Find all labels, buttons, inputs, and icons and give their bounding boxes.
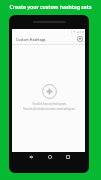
- button[interactable]: Back: [28, 154, 34, 160]
- button[interactable]: Help: [76, 35, 84, 43]
- staticText: Create your custom hashtag sets: [0, 4, 101, 11]
- button[interactable]: Recents: [65, 154, 71, 160]
- button[interactable]: Home: [47, 154, 53, 160]
- staticText: Press the plus button to create a new ha…: [23, 107, 75, 111]
- button[interactable]: Add hashtag set: [42, 84, 57, 99]
- staticText: You don't have any hashtag sets.: [32, 102, 67, 106]
- staticText: Custom Hashtags: [16, 37, 46, 42]
